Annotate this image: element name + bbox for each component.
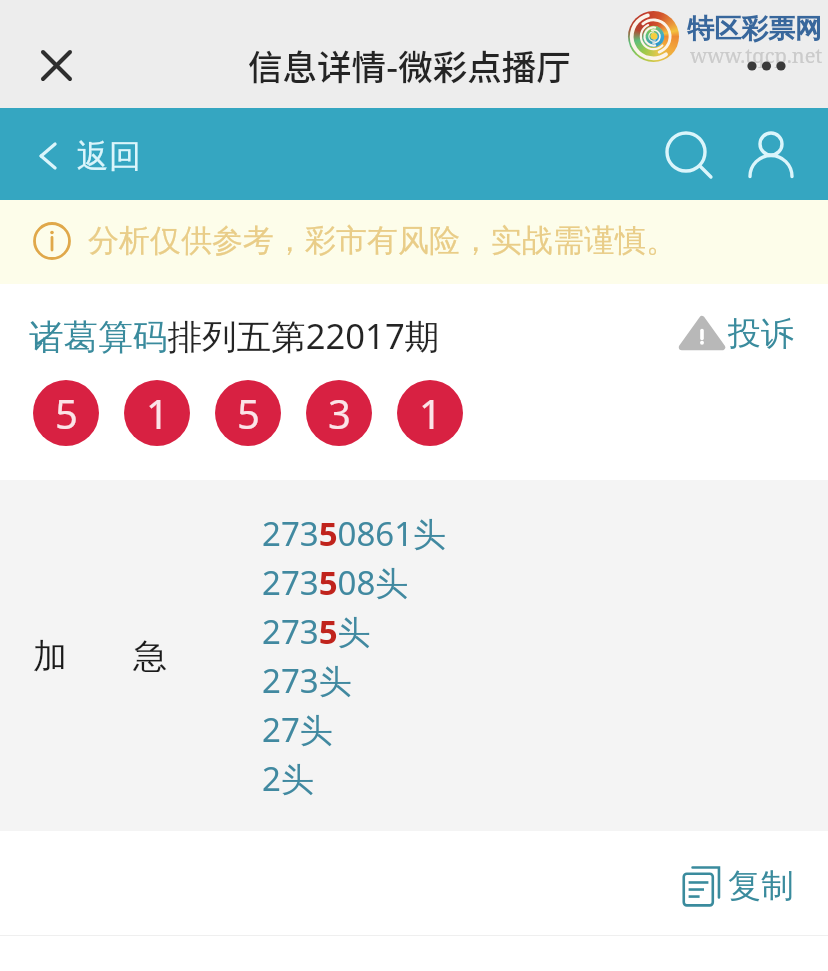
staticText: 5	[237, 386, 260, 440]
staticText: 急	[133, 635, 167, 678]
button[interactable]: 1	[124, 380, 190, 446]
staticText: 复制	[728, 865, 794, 907]
staticText: 特区彩票网	[687, 12, 822, 46]
staticText: 分析仅供参考，彩市有风险，实战需谨慎。	[88, 221, 677, 260]
button[interactable]: 1	[397, 380, 463, 446]
staticText: 返回	[77, 136, 141, 176]
button[interactable]: 5	[215, 380, 281, 446]
staticText: 1	[146, 386, 169, 440]
staticText: www.tqcp.net	[690, 42, 823, 69]
button[interactable]: 投诉	[680, 312, 794, 356]
staticText: 诸葛算码排列五第22017期	[29, 312, 440, 359]
staticText: 27350861头	[262, 511, 447, 556]
button[interactable]: Profile	[738, 119, 804, 185]
staticText: 2735头	[262, 609, 371, 654]
staticText: 加	[33, 635, 67, 678]
staticText: 273508头	[262, 560, 409, 605]
button[interactable]: More options	[747, 50, 799, 82]
button[interactable]: 返回	[27, 136, 141, 176]
staticText: 1	[419, 386, 442, 440]
staticText: 2头	[262, 756, 314, 801]
staticText: 3	[328, 386, 351, 440]
staticText: 27头	[262, 707, 333, 752]
staticText: 5	[55, 386, 78, 440]
staticText: 投诉	[728, 313, 794, 355]
button[interactable]: 复制	[682, 864, 794, 908]
button[interactable]: Search	[653, 119, 719, 185]
button[interactable]: 5	[33, 380, 99, 446]
button[interactable]: Close	[29, 38, 84, 93]
staticText: 273头	[262, 658, 352, 703]
button[interactable]: 3	[306, 380, 372, 446]
staticText: 信息详情-微彩点播厅	[248, 40, 571, 90]
